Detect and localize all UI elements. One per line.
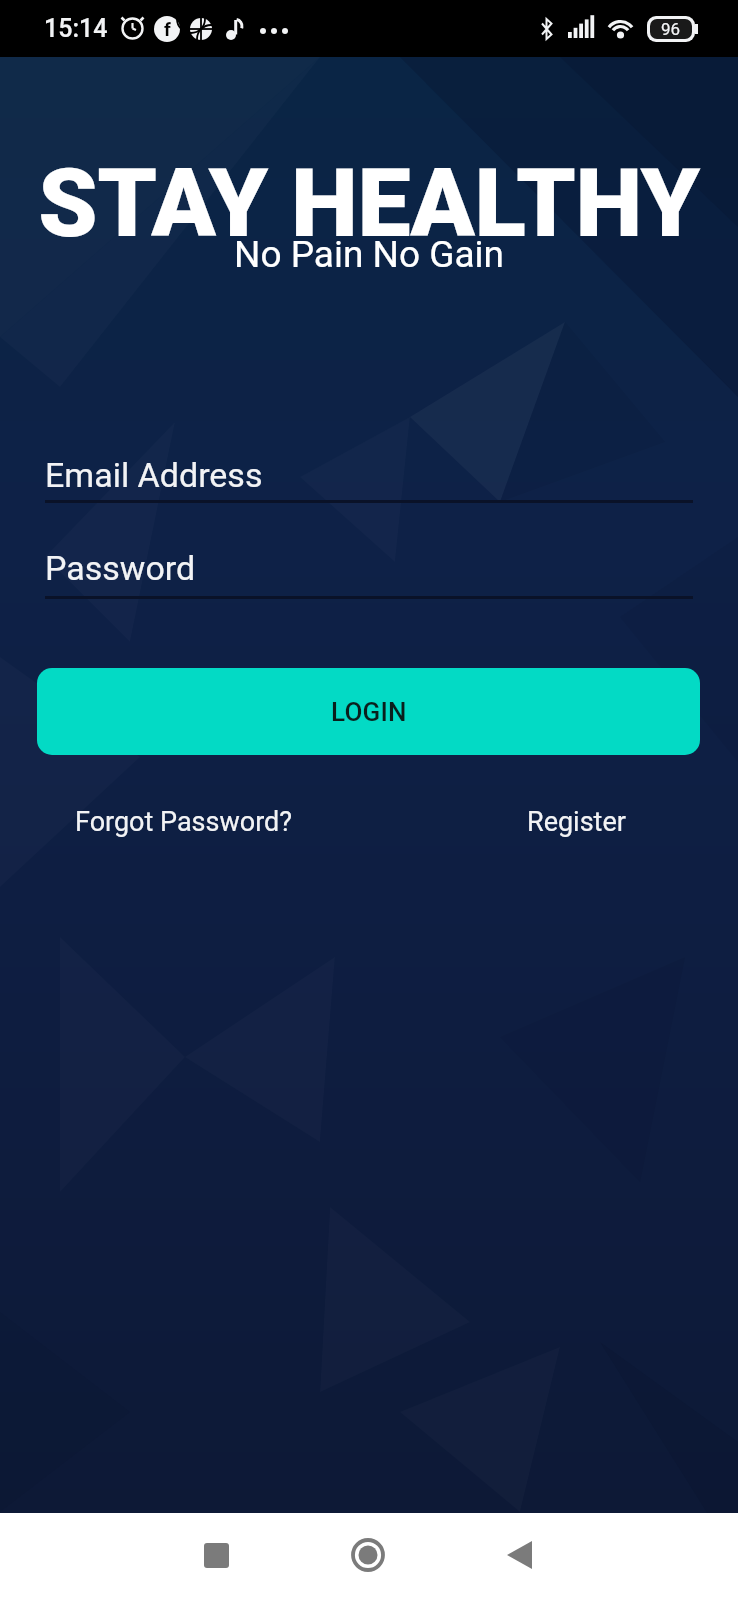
staticText: 96: [661, 19, 681, 39]
staticText: Register: [527, 806, 626, 838]
button[interactable]: [495, 1530, 545, 1580]
button[interactable]: Register: [527, 806, 626, 838]
staticText: Forgot Password?: [75, 806, 293, 838]
staticText: LOGIN: [331, 697, 407, 727]
staticText: STAY HEALTHY: [38, 148, 700, 259]
staticText: 15:14: [44, 14, 108, 43]
staticText: f: [164, 18, 171, 40]
button[interactable]: Forgot Password?: [75, 806, 293, 838]
staticText: Email Address: [45, 455, 263, 495]
button[interactable]: LOGIN: [37, 668, 700, 755]
staticText: Password: [45, 548, 196, 588]
button[interactable]: [343, 1530, 393, 1580]
staticText: No Pain No Gain: [234, 233, 504, 276]
button[interactable]: [191, 1530, 241, 1580]
